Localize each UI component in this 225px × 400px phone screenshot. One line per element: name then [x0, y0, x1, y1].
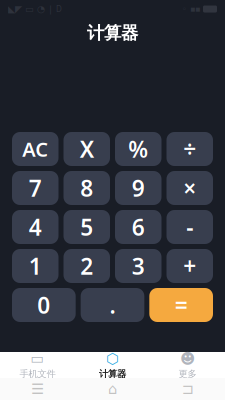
staticText: D [56, 4, 62, 14]
staticText: 7 [29, 173, 42, 203]
button[interactable]: Back [150, 378, 225, 400]
staticText: | [48, 3, 53, 15]
staticText: 9 [132, 173, 145, 203]
button[interactable]: ☻ [150, 352, 225, 378]
staticText: ☻ [180, 350, 195, 367]
button[interactable]: 5 [63, 210, 110, 244]
staticText: X [80, 134, 94, 164]
staticText: ◔ [37, 4, 45, 14]
staticText: 0 [37, 290, 50, 320]
button[interactable]: 8 [63, 171, 110, 205]
staticText: 1 [29, 251, 42, 281]
button[interactable]: 0 [12, 288, 76, 322]
staticText: 计算器 [87, 22, 138, 44]
button[interactable]: 7 [12, 171, 58, 205]
button[interactable]: AC [12, 132, 58, 166]
button[interactable]: 1 [12, 249, 58, 283]
staticText: 3 [132, 251, 145, 281]
button[interactable]: Menu [0, 378, 75, 400]
button[interactable]: 4 [12, 210, 58, 244]
staticText: 计算器 [99, 368, 126, 380]
staticText: 2 [80, 251, 93, 281]
button[interactable]: 9 [115, 171, 161, 205]
staticText: 4 [29, 212, 42, 242]
staticText: + [183, 251, 196, 281]
button[interactable]: 3 [115, 249, 161, 283]
staticText: ÷ [183, 134, 196, 164]
staticText: ◣◤ [8, 4, 22, 14]
staticText: 8 [80, 173, 93, 203]
button[interactable]: 2 [63, 249, 110, 283]
staticText: 手机文件 [19, 368, 55, 380]
button[interactable]: Home [75, 378, 150, 400]
staticText: ▭ [25, 4, 34, 14]
staticText: 更多 [178, 368, 196, 380]
staticText: × [183, 173, 196, 203]
button[interactable]: . [81, 288, 144, 322]
button[interactable]: X [63, 132, 110, 166]
button[interactable]: 6 [115, 210, 161, 244]
button[interactable]: ÷ [166, 132, 213, 166]
staticText: - [186, 212, 193, 242]
staticText: 6 [132, 212, 145, 242]
button[interactable]: % [115, 132, 161, 166]
button[interactable]: × [166, 171, 213, 205]
button[interactable]: ⬡ [75, 352, 150, 378]
staticText: . [109, 290, 115, 320]
staticText: ▭ [30, 350, 44, 367]
button[interactable]: - [166, 210, 213, 244]
staticText: % [128, 134, 148, 164]
button[interactable]: = [149, 288, 213, 322]
staticText: ⊐ [181, 381, 193, 397]
staticText: ◦ ▪▪ [182, 4, 200, 14]
button[interactable]: ▭ [0, 352, 75, 378]
staticText: ☰ [31, 381, 44, 397]
staticText: ⬡ [106, 350, 119, 367]
staticText: AC [22, 136, 48, 162]
staticText: 5 [80, 212, 93, 242]
staticText: ⌂ [108, 381, 117, 397]
button[interactable]: + [166, 249, 213, 283]
staticText: = [175, 290, 188, 320]
